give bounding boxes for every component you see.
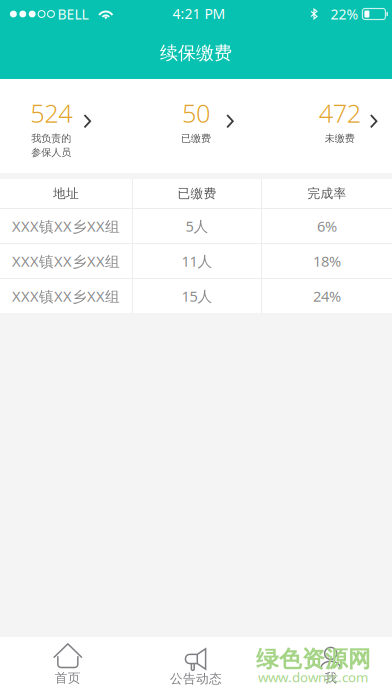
staticText: 18% bbox=[313, 251, 341, 271]
staticText: 公告动态 bbox=[170, 671, 222, 687]
staticText: 22% bbox=[330, 4, 358, 24]
staticText: 绿色资源网 bbox=[256, 645, 371, 674]
button[interactable]: 我 bbox=[261, 637, 392, 696]
staticText: 首页 bbox=[55, 670, 81, 686]
button[interactable]: 首页 bbox=[0, 637, 131, 696]
staticText: 我 bbox=[324, 670, 337, 686]
staticText: 15人 bbox=[181, 286, 212, 306]
button[interactable]: 524 bbox=[0, 79, 131, 173]
staticText: BELL bbox=[57, 4, 88, 24]
staticText: XXX镇XX乡XX组 bbox=[12, 251, 120, 271]
staticText: 未缴费 bbox=[325, 132, 355, 145]
staticText: 11人 bbox=[181, 251, 212, 271]
button[interactable]: 472 bbox=[261, 79, 392, 173]
staticText: 472 bbox=[319, 96, 361, 130]
staticText: 已缴费 bbox=[181, 132, 211, 145]
staticText: XXX镇XX乡XX组 bbox=[12, 216, 120, 236]
staticText: 地址 bbox=[53, 185, 79, 201]
staticText: 6% bbox=[317, 216, 337, 236]
staticText: 续保缴费 bbox=[160, 42, 232, 64]
staticText: 完成率 bbox=[307, 185, 346, 201]
button[interactable]: 50 bbox=[131, 79, 261, 173]
staticText: 参保人员 bbox=[31, 146, 71, 159]
staticText: 5人 bbox=[185, 216, 208, 236]
staticText: 50 bbox=[182, 96, 210, 130]
staticText: 已缴费 bbox=[177, 185, 216, 201]
staticText: XXX镇XX乡XX组 bbox=[12, 286, 120, 306]
button[interactable]: 公告动态 bbox=[131, 637, 261, 696]
staticText: 4:21 PM bbox=[172, 4, 225, 23]
staticText: 524 bbox=[30, 96, 72, 130]
staticText: 我负责的 bbox=[31, 132, 71, 145]
staticText: www.downzc.com bbox=[258, 668, 368, 686]
staticText: 24% bbox=[313, 286, 341, 306]
